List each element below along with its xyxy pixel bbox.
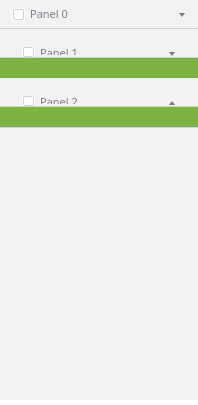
button[interactable]: Select Panel 1 [0,29,198,57]
button[interactable]: Select Panel 0 [12,8,25,21]
staticText: Panel 0 [30,6,68,21]
button[interactable]: Select Panel 0 [0,0,198,28]
button[interactable]: Expand Panel 0 [179,13,185,17]
button[interactable]: Select Panel 1 [22,47,35,57]
button[interactable]: Select Panel 2 [0,78,198,106]
button[interactable]: Select Panel 2 [22,96,35,106]
button[interactable]: Collapse Panel 2 [169,101,175,105]
staticText: Panel 1 [40,45,78,55]
staticText: Panel 2 [40,94,78,104]
button[interactable]: Expand Panel 1 [169,52,175,56]
